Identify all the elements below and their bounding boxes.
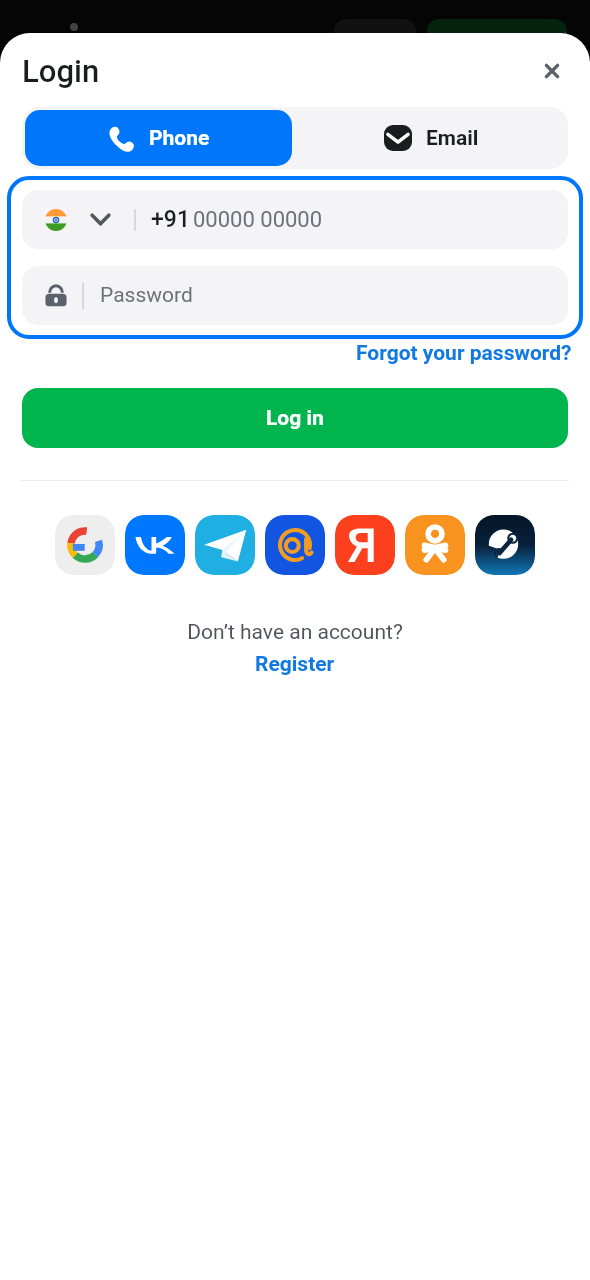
button[interactable]: Forgot your password?: [356, 341, 572, 366]
button[interactable]: Phone: [25, 110, 292, 166]
button[interactable]: Log in: [22, 388, 568, 448]
button[interactable]: Close: [530, 49, 574, 93]
staticText: 00000 00000: [193, 207, 323, 233]
staticText: +91: [151, 206, 190, 233]
staticText: Register: [255, 652, 335, 677]
button[interactable]: Sign in with Google: [55, 515, 115, 575]
staticText: Log in: [266, 406, 324, 431]
staticText: Password: [100, 283, 193, 308]
button[interactable]: +91: [22, 190, 568, 249]
staticText: Forgot your password?: [356, 341, 572, 366]
staticText: Phone: [149, 126, 210, 151]
staticText: Don’t have an account?: [187, 620, 403, 645]
button[interactable]: Sign in with Telegram: [195, 515, 255, 575]
staticText: Email: [426, 126, 479, 151]
button[interactable]: Register: [249, 650, 341, 679]
button[interactable]: Sign in with Yandex: [335, 515, 395, 575]
button[interactable]: Password: [22, 266, 568, 325]
button[interactable]: Sign in with Odnoklassniki: [405, 515, 465, 575]
button[interactable]: Sign in with Mail.ru: [265, 515, 325, 575]
staticText: Login: [22, 53, 100, 89]
button[interactable]: Sign in with VK: [125, 515, 185, 575]
button[interactable]: Email: [295, 107, 568, 169]
button[interactable]: Sign in with Steam: [475, 515, 535, 575]
